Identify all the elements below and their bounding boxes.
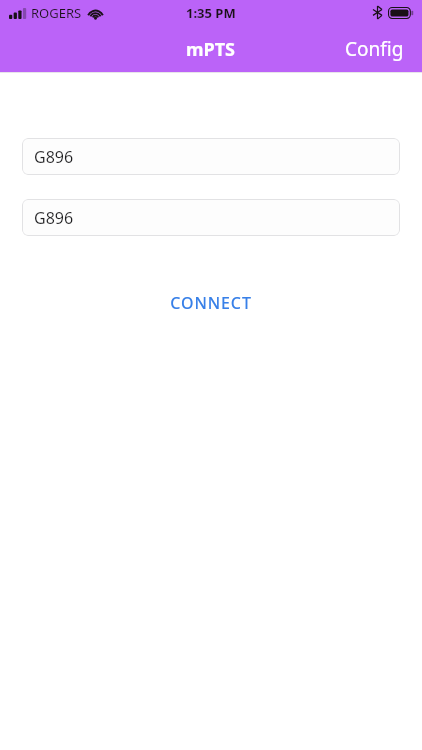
button[interactable]: G896 — [22, 199, 400, 236]
staticText: Config — [345, 36, 404, 62]
staticText: 1:35 PM — [186, 4, 236, 22]
button[interactable]: Connect — [146, 284, 276, 322]
staticText: G896 — [34, 146, 74, 168]
button[interactable]: G896 — [22, 138, 400, 175]
staticText: mPTS — [186, 37, 236, 62]
staticText: ROGERS — [31, 4, 82, 22]
staticText: G896 — [34, 207, 74, 229]
staticText: CONNECT — [170, 292, 252, 314]
button[interactable]: Config — [327, 26, 422, 72]
